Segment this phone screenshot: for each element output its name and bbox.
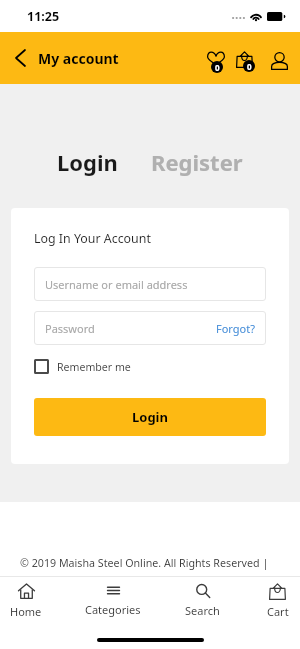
button[interactable]: Login — [34, 398, 266, 436]
staticText: Cart — [267, 604, 289, 619]
button[interactable]: Cart — [243, 577, 300, 623]
staticText: Login — [132, 408, 168, 426]
button[interactable]: Remember me — [34, 359, 131, 374]
button[interactable]: Cart — [231, 32, 261, 84]
button[interactable]: Username or email address — [34, 267, 266, 301]
staticText: 0 — [247, 61, 252, 72]
staticText: Password — [45, 321, 95, 336]
staticText: Search — [185, 603, 220, 618]
staticText: Categories — [85, 602, 141, 617]
staticText: Remember me — [57, 360, 131, 374]
staticText: Log In Your Account — [34, 230, 151, 247]
staticText: Register — [151, 147, 243, 177]
button[interactable]: Wishlist — [201, 32, 231, 84]
staticText: My account — [38, 49, 119, 68]
button[interactable]: Back — [0, 32, 38, 84]
button[interactable]: Login — [49, 143, 126, 181]
staticText: © 2019 Maisha Steel Online. All Rights R… — [20, 556, 300, 571]
button[interactable]: Categories — [52, 577, 174, 623]
button[interactable]: Password — [34, 311, 266, 345]
button[interactable]: Register — [143, 143, 251, 181]
staticText: Login — [57, 147, 118, 177]
button[interactable]: Account — [264, 32, 294, 84]
button[interactable]: Search — [174, 577, 231, 623]
staticText: 11:25 — [27, 8, 60, 25]
staticText: Home — [10, 604, 42, 619]
button[interactable]: Home — [0, 577, 52, 623]
button[interactable]: Forgot? — [216, 321, 255, 336]
staticText: 0 — [215, 62, 220, 73]
staticText: Username or email address — [45, 277, 188, 292]
